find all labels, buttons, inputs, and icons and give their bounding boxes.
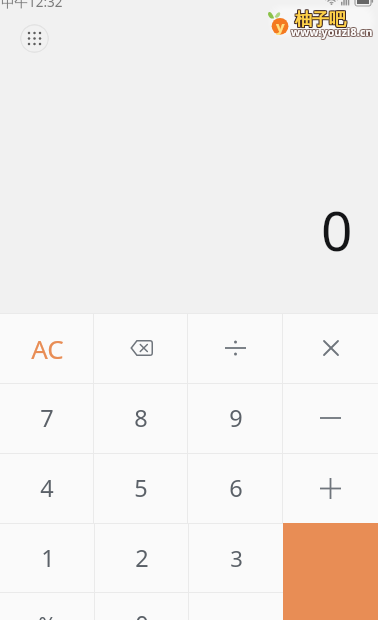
button[interactable]: 2 bbox=[95, 523, 189, 592]
button[interactable]: Multiply bbox=[283, 313, 378, 383]
button[interactable]: 0 bbox=[95, 592, 189, 620]
button[interactable]: 8 bbox=[94, 383, 188, 453]
button[interactable]: AC bbox=[0, 313, 94, 383]
staticText: 9 bbox=[229, 402, 243, 434]
staticText: 柚子吧 bbox=[294, 10, 345, 31]
button[interactable]: % bbox=[0, 592, 95, 620]
staticText: y bbox=[276, 16, 285, 36]
button[interactable]: 3 bbox=[189, 523, 283, 592]
button[interactable]: Minus bbox=[283, 383, 378, 453]
staticText: 1 bbox=[41, 542, 55, 574]
staticText: AC bbox=[31, 331, 64, 366]
staticText: 6 bbox=[229, 472, 243, 504]
staticText: www.youzi8.cn bbox=[292, 24, 374, 38]
button[interactable]: 5 bbox=[94, 453, 188, 523]
button[interactable]: Backspace bbox=[94, 313, 188, 383]
staticText: 柚子吧 bbox=[295, 9, 346, 30]
staticText: 2 bbox=[135, 542, 149, 574]
button[interactable]: 9 bbox=[188, 383, 283, 453]
staticText: 柚子吧 bbox=[295, 8, 346, 29]
staticText: www.youzi8.cn bbox=[291, 26, 373, 40]
button[interactable]: Plus bbox=[283, 453, 378, 523]
staticText: 0 bbox=[321, 192, 353, 267]
staticText: www.youzi8.cn bbox=[290, 24, 372, 38]
staticText: % bbox=[38, 609, 57, 620]
staticText: 柚子吧 bbox=[296, 8, 347, 29]
staticText: 0 bbox=[135, 608, 149, 620]
staticText: www.youzi8.cn bbox=[291, 25, 373, 39]
staticText: 柚子吧 bbox=[295, 10, 346, 31]
button[interactable]: Unit converter bbox=[20, 24, 49, 53]
staticText: www.youzi8.cn bbox=[290, 25, 372, 39]
button[interactable]: Divide bbox=[188, 313, 283, 383]
staticText: www.youzi8.cn bbox=[292, 25, 374, 39]
staticText: 5 bbox=[134, 472, 148, 504]
button[interactable]: 7 bbox=[0, 383, 94, 453]
staticText: 柚子吧 bbox=[294, 9, 345, 30]
staticText: 3 bbox=[230, 543, 243, 573]
staticText: www.youzi8.cn bbox=[290, 26, 372, 40]
staticText: 柚子吧 bbox=[294, 8, 345, 29]
staticText: www.youzi8.cn bbox=[291, 24, 373, 38]
button[interactable]: 1 bbox=[0, 523, 95, 592]
staticText: 7 bbox=[40, 402, 54, 434]
staticText: 柚子吧 bbox=[296, 9, 347, 30]
button[interactable]: 4 bbox=[0, 453, 94, 523]
button[interactable]: 6 bbox=[188, 453, 283, 523]
staticText: 柚子吧 bbox=[296, 10, 347, 31]
staticText: www.youzi8.cn bbox=[292, 26, 374, 40]
staticText: 中午12:32 bbox=[1, 0, 63, 10]
staticText: 8 bbox=[134, 402, 148, 434]
staticText: 4 bbox=[40, 472, 54, 504]
